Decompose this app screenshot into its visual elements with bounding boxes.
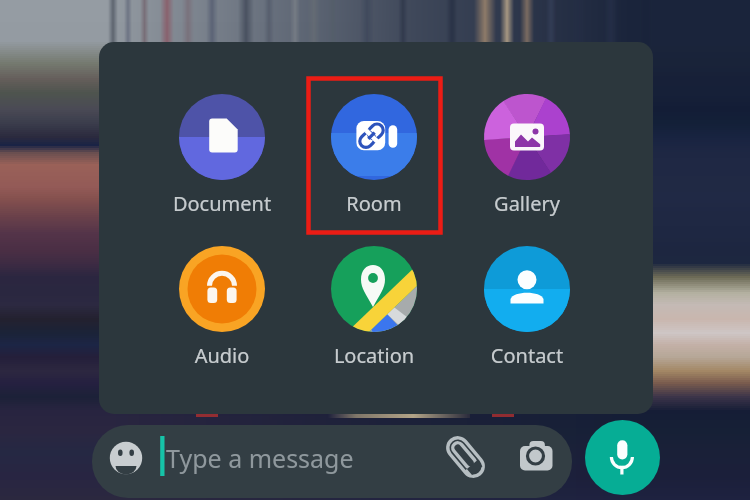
staticText: Contact	[462, 342, 592, 369]
button[interactable]: Location	[309, 237, 439, 362]
button[interactable]: Record voice message	[585, 420, 660, 495]
button[interactable]: Gallery	[462, 85, 592, 210]
staticText: Document	[157, 190, 287, 217]
staticText: Audio	[157, 342, 287, 369]
staticText: Location	[309, 342, 439, 369]
button[interactable]: Audio	[157, 237, 287, 362]
button[interactable]: Room	[309, 85, 439, 210]
staticText: Type a message	[166, 441, 354, 475]
staticText: Gallery	[462, 190, 592, 217]
button[interactable]: Document	[157, 85, 287, 210]
staticText: Room	[309, 190, 439, 217]
button[interactable]: Contact	[462, 237, 592, 362]
button[interactable]	[92, 425, 572, 498]
